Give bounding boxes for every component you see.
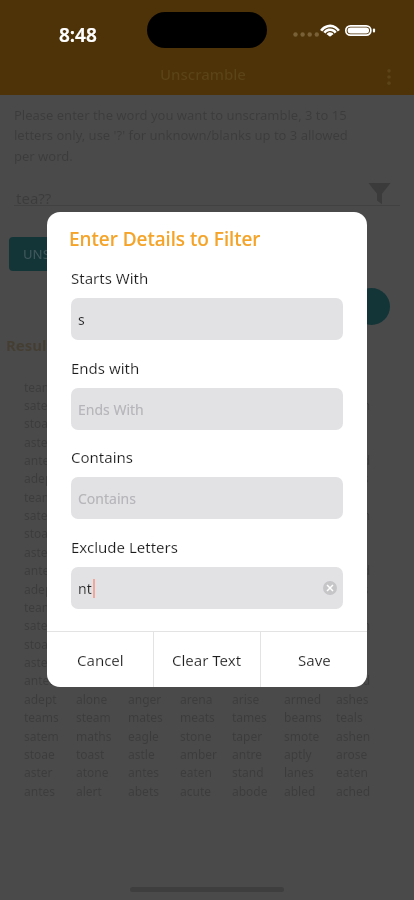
staticText: ached (336, 562, 371, 578)
staticText: aster (24, 544, 53, 560)
staticText: eaten (336, 764, 369, 780)
button[interactable]: Ends With (71, 388, 343, 430)
staticText: abode (232, 562, 268, 578)
staticText: aptly (284, 746, 312, 762)
staticText: abode (232, 672, 268, 688)
staticText: stand (232, 764, 264, 780)
staticText: Unscramble (160, 64, 246, 84)
staticText: acute (180, 562, 212, 578)
staticText: antes (24, 672, 55, 688)
staticText: Results (6, 335, 61, 355)
button[interactable]: More options (378, 66, 400, 88)
staticText: arena (180, 470, 213, 486)
staticText: tames (232, 709, 267, 725)
staticText: abled (284, 672, 316, 688)
staticText: maths (76, 397, 112, 413)
staticText: ashen (336, 728, 371, 744)
staticText: eaten (180, 764, 213, 780)
staticText: alert (76, 562, 102, 578)
staticText: abets (128, 562, 159, 578)
staticText: astle (128, 636, 155, 652)
staticText: eagle (128, 617, 159, 633)
staticText: ashes (336, 581, 369, 597)
staticText: teams (24, 599, 59, 615)
staticText: antre (232, 636, 262, 652)
staticText: alone (76, 581, 108, 597)
staticText: 8:48 (59, 22, 97, 48)
staticText: steam (76, 379, 111, 395)
staticText: teams (24, 489, 59, 505)
button[interactable]: UNSCRAMBLE (23, 237, 110, 271)
staticText: smote (284, 728, 320, 744)
staticText: alone (76, 470, 108, 486)
staticText: arose (336, 415, 368, 431)
button[interactable]: Clear text (323, 581, 337, 595)
staticText: arena (180, 691, 213, 707)
staticText: armed (284, 691, 322, 707)
staticText: amber (180, 746, 218, 762)
staticText: Exclude Letters (71, 537, 178, 557)
staticText: stone (180, 728, 212, 744)
staticText: alert (76, 672, 102, 688)
staticText: stand (232, 654, 264, 670)
staticText: ashen (336, 507, 371, 523)
staticText: tames (232, 599, 267, 615)
staticText: satem (24, 397, 59, 413)
button[interactable]: Filter (367, 178, 392, 206)
staticText: arose (336, 525, 368, 541)
staticText: taper (232, 507, 263, 523)
staticText: antre (232, 415, 262, 431)
button[interactable]: Save (261, 632, 367, 687)
staticText: maths (76, 728, 112, 744)
staticText: ashen (336, 617, 371, 633)
button[interactable]: Contains (71, 477, 343, 519)
staticText: meats (180, 709, 215, 725)
staticText: antes (24, 783, 55, 799)
staticText: lanes (284, 764, 314, 780)
staticText: stoae (24, 525, 55, 541)
staticText: teams (24, 709, 59, 725)
staticText: UNSCRAMBLE (23, 245, 110, 263)
staticText: nt (78, 579, 92, 598)
staticText: atone (76, 654, 109, 670)
staticText: beams (284, 599, 322, 615)
staticText: eaten (336, 434, 369, 450)
staticText: toast (76, 415, 105, 431)
staticText: lanes (284, 654, 314, 670)
staticText: acute (180, 783, 212, 799)
staticText: eagle (128, 507, 159, 523)
staticText: abled (284, 562, 316, 578)
staticText: steam (76, 489, 111, 505)
staticText: eaten (336, 544, 369, 560)
button[interactable]: s (71, 298, 343, 340)
button[interactable]: Cancel (47, 632, 153, 687)
staticText: tames (232, 379, 267, 395)
button[interactable]: nt (71, 567, 343, 609)
staticText: aptly (284, 415, 312, 431)
staticText: stoae (24, 415, 55, 431)
staticText: toast (76, 746, 105, 762)
staticText: abets (128, 672, 159, 688)
button[interactable]: Clear Text (154, 632, 260, 687)
staticText: adept (24, 470, 57, 486)
staticText: antes (128, 764, 159, 780)
staticText: Starts With (71, 268, 149, 288)
staticText: atone (76, 764, 109, 780)
button[interactable]: Dictionary (353, 288, 390, 325)
staticText: Ends with (71, 358, 140, 378)
